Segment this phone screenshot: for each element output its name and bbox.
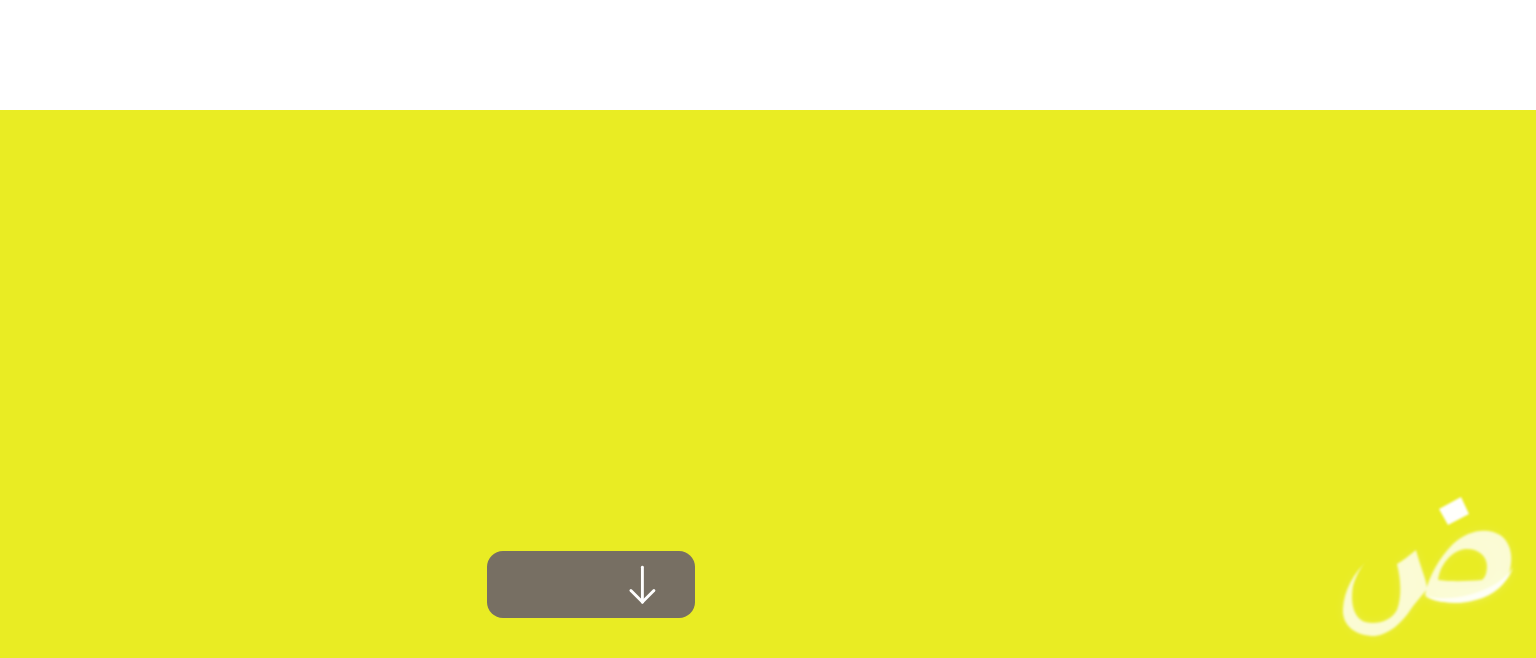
button[interactable]: Scroll down [487,551,695,618]
